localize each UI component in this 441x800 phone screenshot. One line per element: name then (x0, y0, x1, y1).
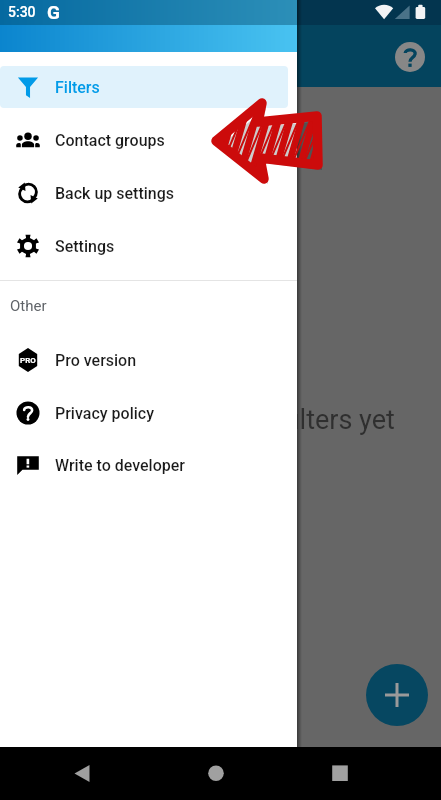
button[interactable]: Back (67, 759, 97, 789)
button[interactable]: Add filter (366, 664, 428, 726)
staticText: G (47, 1, 60, 23)
button[interactable]: Write to developer (0, 444, 288, 486)
button[interactable]: Recent apps (325, 759, 355, 789)
staticText: Settings (55, 237, 115, 256)
staticText: Contact groups (55, 131, 165, 150)
staticText: Write to developer (55, 456, 185, 475)
button[interactable]: Help (390, 37, 430, 77)
staticText: Pro version (55, 351, 137, 370)
button[interactable]: Settings (0, 225, 288, 267)
staticText: Filters (55, 78, 100, 97)
staticText: You have no filters yet (132, 404, 395, 436)
button[interactable]: Filters (0, 66, 288, 108)
button[interactable]: Privacy policy (0, 392, 288, 434)
staticText: PRO (20, 356, 36, 365)
button[interactable]: Contact groups (0, 119, 288, 161)
button[interactable]: PRO (0, 339, 288, 381)
button[interactable]: Back up settings (0, 172, 288, 214)
staticText: Back up settings (55, 184, 175, 203)
button[interactable]: Home (201, 759, 231, 789)
staticText: 5:30 (8, 4, 36, 20)
staticText: Other (10, 297, 47, 315)
staticText: Privacy policy (55, 404, 154, 423)
